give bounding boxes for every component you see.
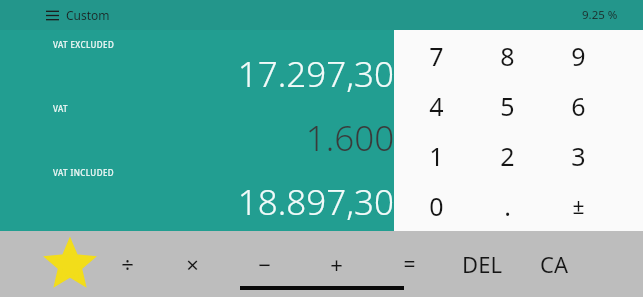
button[interactable]: × <box>156 238 228 290</box>
staticText: 2 <box>500 139 515 173</box>
staticText: 8 <box>500 39 515 73</box>
button[interactable]: 6 <box>543 81 614 131</box>
staticText: VAT INCLUDED <box>53 167 115 178</box>
staticText: Custom <box>66 7 110 23</box>
staticText: 9.25 % <box>582 7 618 23</box>
button[interactable]: 4 <box>401 81 472 131</box>
staticText: 9 <box>571 39 586 73</box>
staticText: . <box>504 189 511 223</box>
button[interactable]: 3 <box>543 131 614 181</box>
staticText: 1 <box>429 139 444 173</box>
staticText: − <box>258 249 271 279</box>
staticText: 1.600, <box>305 114 394 162</box>
button[interactable]: 1 <box>401 131 472 181</box>
staticText: 18.897,30 <box>237 178 394 226</box>
staticText: VAT <box>53 103 68 114</box>
button[interactable]: + <box>300 238 372 290</box>
button[interactable]: 5 <box>472 81 543 131</box>
staticText: VAT EXCLUDED <box>53 39 115 50</box>
staticText: = <box>403 250 416 279</box>
staticText: 17.297,30 <box>237 50 394 98</box>
button[interactable]: ± <box>543 181 614 231</box>
other: Menu <box>46 10 59 21</box>
button[interactable]: . <box>472 181 543 231</box>
staticText: 6 <box>571 89 586 123</box>
button[interactable]: − <box>228 238 300 290</box>
button[interactable]: Favourite <box>42 238 98 290</box>
button[interactable]: 9 <box>543 30 614 81</box>
button[interactable]: Menu <box>40 3 116 27</box>
staticText: 0 <box>429 189 444 223</box>
staticText: CA <box>540 249 568 279</box>
button[interactable]: ÷ <box>98 238 156 290</box>
button[interactable]: 8 <box>472 30 543 81</box>
staticText: ÷ <box>121 249 134 279</box>
staticText: ± <box>572 192 585 221</box>
button[interactable]: 7 <box>401 30 472 81</box>
staticText: 3 <box>571 139 586 173</box>
staticText: + <box>330 249 343 279</box>
button[interactable]: 0 <box>401 181 472 231</box>
staticText: DEL <box>462 249 502 279</box>
staticText: 4 <box>429 89 444 123</box>
button[interactable]: = <box>372 238 446 290</box>
staticText: 5 <box>500 89 515 123</box>
staticText: 7 <box>429 39 444 73</box>
staticText: × <box>186 249 199 279</box>
button[interactable]: 2 <box>472 131 543 181</box>
button[interactable]: DEL <box>446 238 518 290</box>
button[interactable]: CA <box>518 238 590 290</box>
button[interactable]: 9.25 % <box>574 2 626 28</box>
